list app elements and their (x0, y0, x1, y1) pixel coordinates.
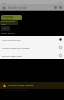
staticText: more (3, 27, 9, 30)
other: Warning (3, 84, 6, 87)
other: Select Online network smitten (59, 46, 62, 49)
staticText: N 4 (58, 1, 62, 4)
staticText: Compose message (2, 15, 22, 20)
button[interactable]: Account (59, 6, 62, 9)
staticText: Online network smitten (2, 46, 30, 49)
other: Search (2, 6, 6, 10)
staticText: The normal one (2, 38, 21, 41)
other: Select Strictly deducted (59, 54, 62, 57)
button[interactable]: more (1, 26, 10, 31)
staticText: 9:41 (2, 1, 7, 4)
staticText: Account action needed (8, 84, 34, 87)
staticText: Strictly deducted (2, 54, 22, 57)
button[interactable]: Warning (0, 82, 64, 89)
button[interactable]: Conversation draft (0, 20, 18, 25)
button[interactable]: Compose message (1, 15, 22, 20)
other: Select The normal one (59, 38, 62, 41)
staticText: Some footnote text here (4, 89, 28, 92)
staticText: Select option (1, 32, 15, 35)
button[interactable]: Strictly deducted (0, 51, 64, 59)
button[interactable]: Search (0, 4, 64, 11)
button[interactable]: Online network smitten (0, 43, 64, 51)
staticText: Search in mail (8, 6, 27, 10)
button[interactable]: The normal one (0, 36, 64, 43)
staticText: Conversation draft (1, 20, 18, 25)
button[interactable]: Filter (54, 6, 57, 9)
